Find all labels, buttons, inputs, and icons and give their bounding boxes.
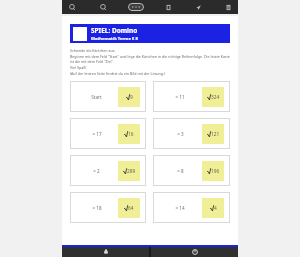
staticText: 9	[130, 94, 133, 101]
staticText: 289	[127, 168, 136, 175]
staticText: 121	[211, 131, 220, 138]
staticText: = 18	[92, 205, 102, 211]
button[interactable]: = 8	[153, 155, 230, 186]
staticText: Viel Spaß!	[70, 65, 87, 70]
button[interactable]: = 14	[153, 192, 230, 223]
button[interactable]: Tabs	[128, 3, 144, 11]
staticText: = 17	[92, 131, 102, 137]
button[interactable]: Navigate	[192, 1, 204, 13]
button[interactable]: Start	[70, 81, 146, 112]
staticText: Beginne mit dem Feld "Start" und lege di…	[70, 54, 230, 64]
staticText: Schneide die Kärtchen aus.	[70, 48, 116, 53]
staticText: 64	[128, 205, 134, 212]
staticText: 324	[211, 94, 220, 101]
button[interactable]: SPIEL: Domino	[70, 24, 230, 43]
staticText: = 11	[175, 94, 185, 100]
button[interactable]: = 3	[153, 118, 230, 149]
button[interactable]: Power	[151, 247, 238, 257]
button[interactable]: Bookmark	[162, 1, 174, 13]
staticText: 4	[214, 205, 217, 212]
button[interactable]: = 17	[70, 118, 146, 149]
button[interactable]: Zoom	[97, 1, 109, 13]
button[interactable]: = 11	[153, 81, 230, 112]
staticText: Mathematik Terme E 8	[91, 36, 138, 42]
staticText: = 14	[175, 205, 185, 211]
button[interactable]: Search	[66, 1, 78, 13]
staticText: Start	[91, 94, 102, 100]
button[interactable]: Print	[62, 247, 149, 257]
staticText: (Auf der letzten Seite findest du ein Bi…	[70, 71, 166, 76]
button[interactable]: More	[222, 1, 234, 13]
staticText: = 8	[177, 168, 184, 174]
staticText: SPIEL: Domino	[91, 26, 138, 35]
staticText: 16	[128, 131, 134, 138]
button[interactable]: = 18	[70, 192, 146, 223]
staticText: = 2	[93, 168, 100, 174]
staticText: = 3	[177, 131, 184, 137]
staticText: 196	[211, 168, 220, 175]
button[interactable]: = 2	[70, 155, 146, 186]
